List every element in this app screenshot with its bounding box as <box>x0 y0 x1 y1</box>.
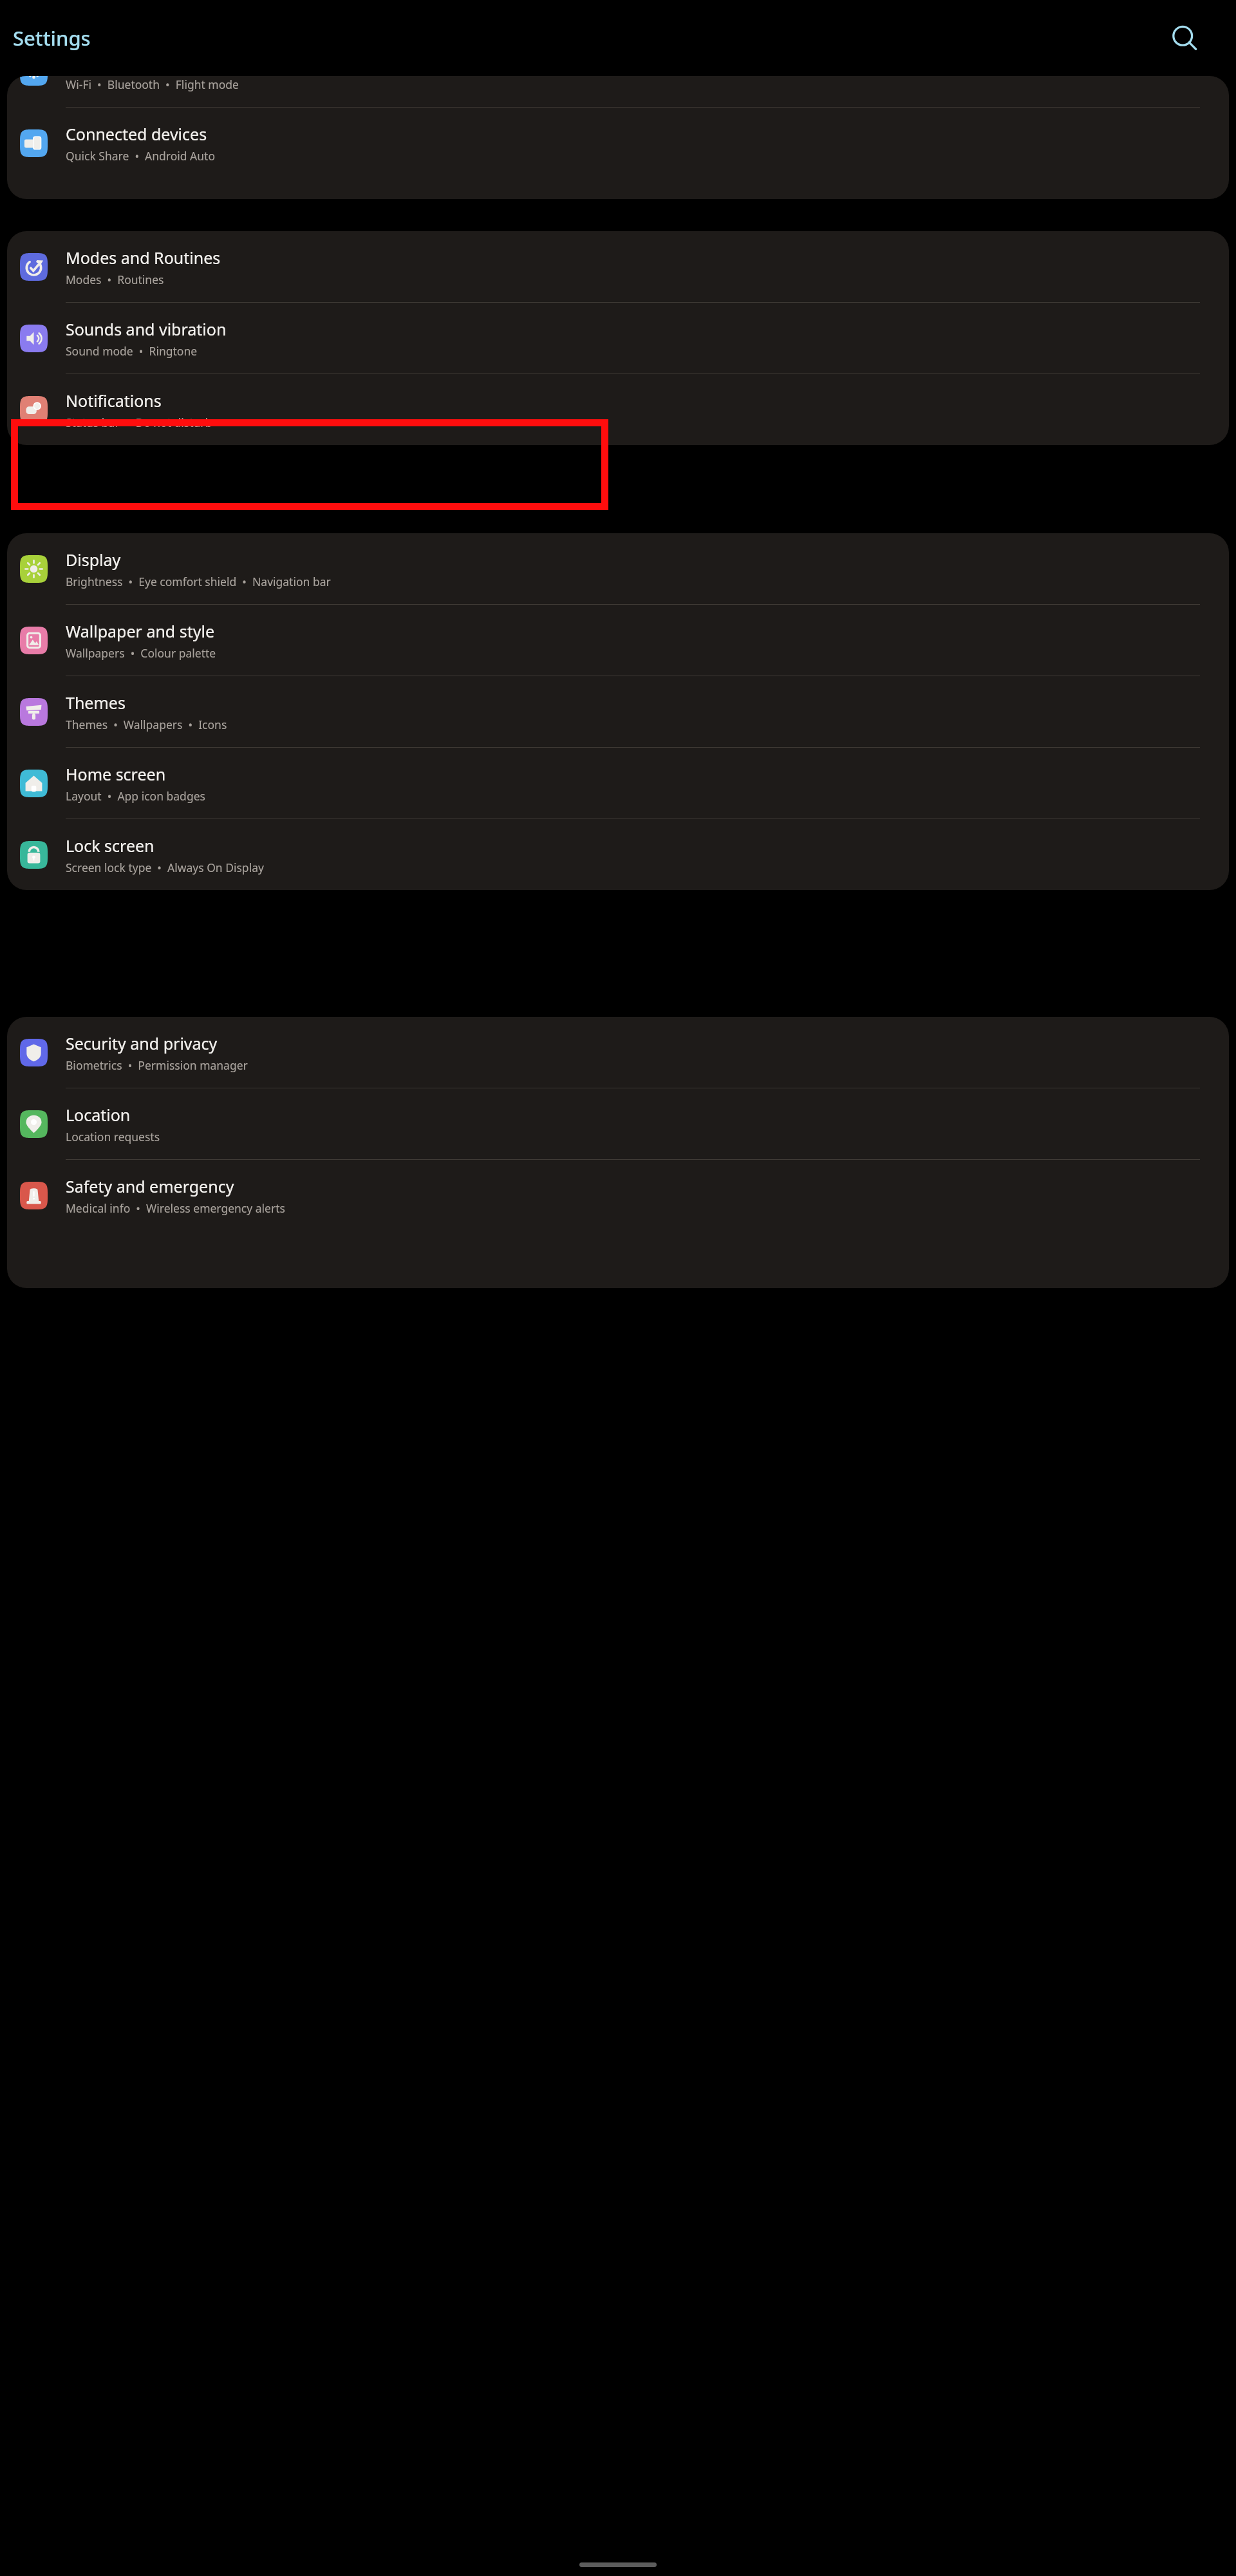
staticText: Brightness • Eye comfort shield • Naviga… <box>66 574 331 589</box>
staticText: Sound mode • Ringtone <box>66 343 198 359</box>
staticText: Wi-Fi • Bluetooth • Flight mode <box>66 77 239 92</box>
button[interactable]: Themes <box>7 676 1229 747</box>
staticText: Layout • App icon badges <box>66 788 205 804</box>
staticText: Wallpaper and style <box>66 620 215 642</box>
staticText: Medical info • Wireless emergency alerts <box>66 1200 285 1216</box>
staticText: Status bar • Do not disturb <box>66 415 212 430</box>
staticText: Themes <box>66 692 126 714</box>
staticText: Connected devices <box>66 123 207 145</box>
staticText: Wallpapers • Colour palette <box>66 645 216 661</box>
button[interactable]: Connected devices <box>7 108 1229 178</box>
staticText: Themes • Wallpapers • Icons <box>66 717 227 732</box>
staticText: Modes • Routines <box>66 272 164 287</box>
staticText: Lock screen <box>66 835 154 857</box>
button[interactable]: Home screen <box>7 748 1229 819</box>
staticText: Home screen <box>66 763 166 785</box>
staticText: Quick Share • Android Auto <box>66 148 216 164</box>
staticText: Safety and emergency <box>66 1175 234 1197</box>
staticText: Screen lock type • Always On Display <box>66 860 264 875</box>
staticText: Settings <box>13 24 91 52</box>
staticText: Biometrics • Permission manager <box>66 1057 248 1073</box>
button[interactable]: Wallpaper and style <box>7 605 1229 676</box>
button[interactable]: Display <box>7 533 1229 604</box>
button[interactable]: Search <box>1166 20 1203 56</box>
button[interactable]: Connections <box>7 76 1229 107</box>
staticText: Security and privacy <box>66 1032 218 1054</box>
button[interactable]: Safety and emergency <box>7 1160 1229 1231</box>
button[interactable]: Notifications <box>7 374 1229 445</box>
staticText: Modes and Routines <box>66 247 221 269</box>
button[interactable]: Location <box>7 1088 1229 1159</box>
staticText: Display <box>66 549 121 571</box>
button[interactable]: Security and privacy <box>7 1017 1229 1088</box>
button[interactable]: Lock screen <box>7 819 1229 890</box>
button[interactable]: Modes and Routines <box>7 231 1229 302</box>
staticText: Notifications <box>66 390 162 412</box>
button[interactable]: Sounds and vibration <box>7 303 1229 374</box>
staticText: Sounds and vibration <box>66 318 227 340</box>
staticText: Location requests <box>66 1129 160 1144</box>
staticText: Location <box>66 1104 131 1126</box>
